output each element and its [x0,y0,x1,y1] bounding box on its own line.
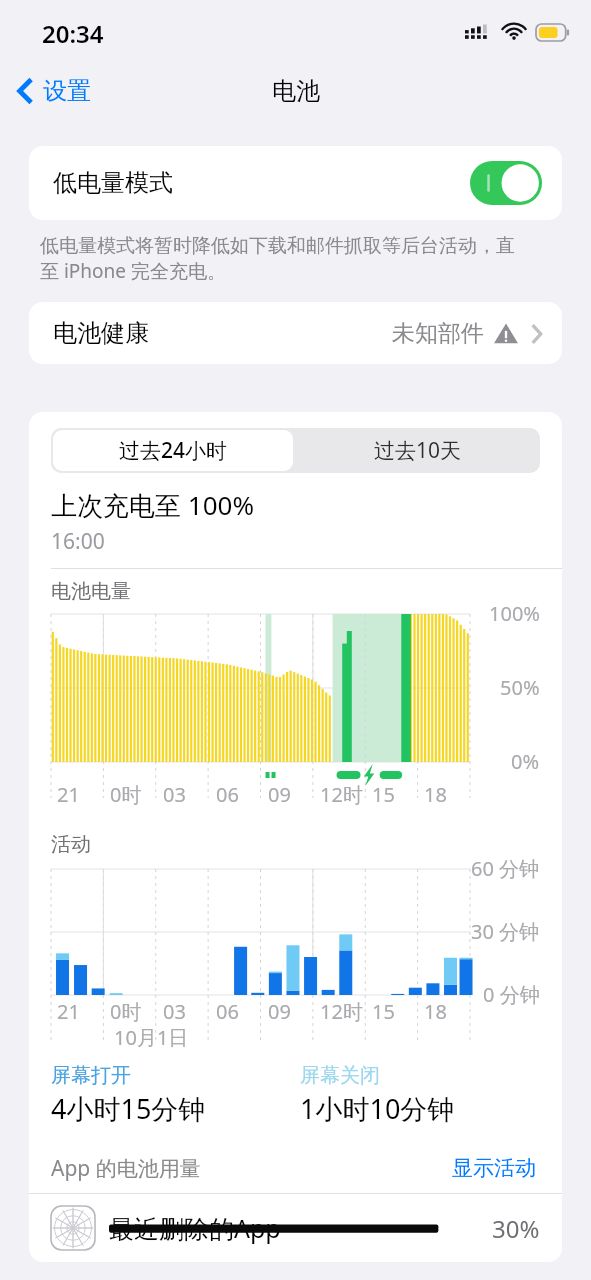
staticText: 最近删除的App [109,1211,281,1245]
staticText: 4小时15分钟 [51,1090,206,1127]
staticText: 18 [424,781,447,808]
staticText: 0时 [110,998,142,1025]
staticText: 06 [216,781,239,808]
staticText: 50% [500,674,540,701]
staticText: 0% [511,748,540,775]
staticText: 活动 [51,832,91,857]
staticText: 低电量模式将暂时降低如下载和邮件抓取等后台活动，直 [40,234,515,258]
staticText: 12时 [320,781,363,808]
staticText: 60 分钟 [471,855,540,882]
button[interactable]: 设置 [0,68,105,114]
staticText: 1小时10分钟 [300,1090,455,1127]
button[interactable]: 低电量模式 [29,146,562,220]
staticText: 21 [57,998,80,1025]
staticText: 30% [492,1212,540,1245]
staticText: 20:34 [42,17,104,50]
staticText: 09 [268,998,291,1025]
button[interactable]: 电池健康 [29,302,562,364]
staticText: 电池 [272,76,320,106]
button[interactable]: 最近删除的App [29,1194,562,1262]
staticText: 03 [163,998,186,1025]
staticText: 06 [216,998,239,1025]
staticText: 09 [268,781,291,808]
staticText: 0 分钟 [483,981,540,1008]
staticText: 低电量模式 [53,168,173,198]
staticText: 至 iPhone 完全充电。 [40,258,226,284]
staticText: 16:00 [51,527,105,556]
staticText: App 的电池用量 [51,1154,201,1183]
staticText: 12时 [320,998,363,1025]
staticText: 屏幕打开 [51,1063,131,1088]
staticText: 屏幕关闭 [300,1063,380,1088]
staticText: 电池电量 [51,579,131,604]
staticText: 过去10天 [374,436,462,465]
staticText: 100% [489,600,540,627]
staticText: 过去24小时 [119,436,228,465]
staticText: 显示活动 [452,1155,536,1181]
staticText: 21 [57,781,80,808]
button[interactable]: 过去10天 [295,428,540,473]
staticText: 10月1日 [114,1024,189,1051]
staticText: 电池健康 [53,318,149,348]
staticText: 0时 [110,781,142,808]
button[interactable]: 显示活动 [448,1151,540,1185]
button[interactable]: 低电量模式开关 [470,161,542,205]
staticText: 15 [372,781,395,808]
staticText: 18 [424,998,447,1025]
staticText: 15 [372,998,395,1025]
staticText: 30 分钟 [471,918,540,945]
button[interactable]: 过去24小时 [53,430,293,471]
staticText: 03 [163,781,186,808]
staticText: 设置 [43,76,91,106]
staticText: 未知部件 [392,319,484,348]
staticText: 上次充电至 100% [51,487,254,523]
